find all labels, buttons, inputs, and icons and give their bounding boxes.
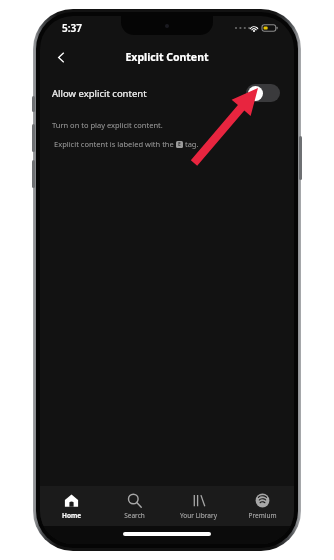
staticText: Premium (248, 511, 277, 520)
button[interactable]: Search (103, 486, 166, 526)
staticText: Your Library (180, 511, 217, 520)
button[interactable]: Premium (230, 486, 294, 526)
button[interactable]: Your Library (166, 486, 230, 526)
staticText: Explicit content is labeled with the (54, 139, 176, 149)
staticText: Search (124, 511, 145, 520)
staticText: E (178, 141, 181, 148)
staticText: Home (62, 511, 81, 520)
staticText: Explicit Content (125, 50, 209, 64)
staticText: 5:37 (62, 21, 82, 35)
button[interactable]: Allow explicit content toggle (246, 84, 280, 102)
staticText: Allow explicit content (52, 87, 147, 100)
staticText: Turn on to play explicit content. (52, 120, 163, 130)
button[interactable]: Back (48, 44, 74, 70)
button[interactable]: Allow explicit content (40, 78, 294, 108)
button[interactable]: Home (40, 486, 103, 526)
staticText: tag. (183, 139, 199, 149)
